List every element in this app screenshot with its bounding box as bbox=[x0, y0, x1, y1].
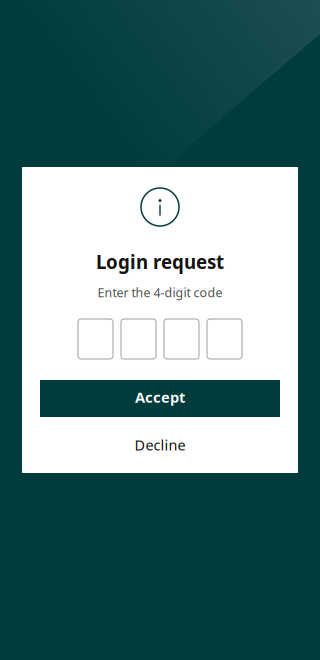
staticText: Decline bbox=[134, 435, 185, 455]
staticText: Enter the 4-digit code bbox=[97, 284, 222, 301]
button[interactable]: Decline bbox=[40, 428, 280, 462]
staticText: Accept bbox=[135, 387, 185, 407]
staticText: Login request bbox=[96, 249, 224, 274]
button[interactable]: Accept bbox=[40, 380, 280, 417]
button[interactable]: Enter the 4-digit code bbox=[59, 309, 261, 369]
